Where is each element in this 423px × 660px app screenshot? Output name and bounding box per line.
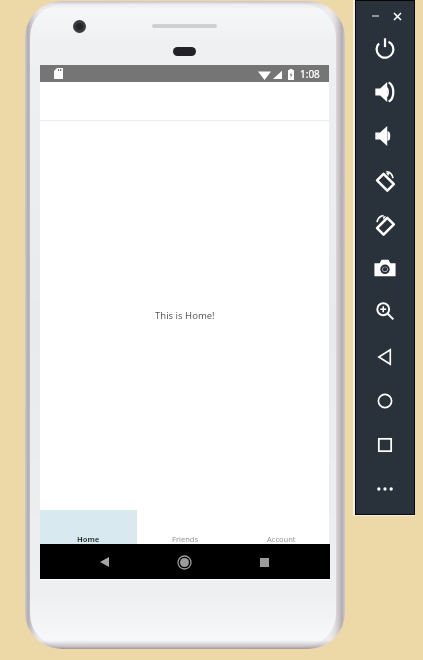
button[interactable]: Power	[363, 27, 407, 69]
button[interactable]: Recent apps	[363, 424, 407, 466]
button[interactable]: Friends	[137, 510, 233, 545]
staticText: Home	[77, 534, 100, 544]
button[interactable]: Home	[363, 380, 407, 422]
button[interactable]: Recent apps	[248, 548, 280, 576]
button[interactable]: Take screenshot	[363, 247, 407, 289]
staticText: This is Home!	[155, 309, 215, 322]
staticText: 1:08	[300, 67, 320, 81]
button[interactable]: Rotate right	[363, 204, 407, 246]
button[interactable]: Account	[233, 510, 329, 545]
button[interactable]: Volume down	[363, 115, 407, 157]
button[interactable]: More	[363, 468, 407, 510]
button[interactable]: Back	[88, 548, 120, 576]
button[interactable]: Volume up	[363, 71, 407, 113]
button[interactable]: Home	[168, 548, 200, 576]
button[interactable]: Home	[40, 510, 137, 545]
button[interactable]: Zoom	[363, 290, 407, 332]
button[interactable]: Close	[387, 7, 407, 25]
staticText: Account	[267, 534, 296, 544]
staticText: Friends	[172, 534, 198, 544]
button[interactable]: Minimize	[364, 7, 386, 25]
button[interactable]: Rotate left	[363, 160, 407, 202]
button[interactable]: Back	[363, 336, 407, 378]
